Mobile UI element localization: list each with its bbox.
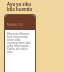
staticText: Aya ya siku bila kuendo [7, 1, 33, 12]
staticText: Mithali 3:5 [7, 23, 23, 27]
button[interactable]: Mithali 3:5 [5, 15, 35, 30]
staticText: Mtumaini Bwana kwa moyo wako wote wala u… [7, 32, 33, 54]
